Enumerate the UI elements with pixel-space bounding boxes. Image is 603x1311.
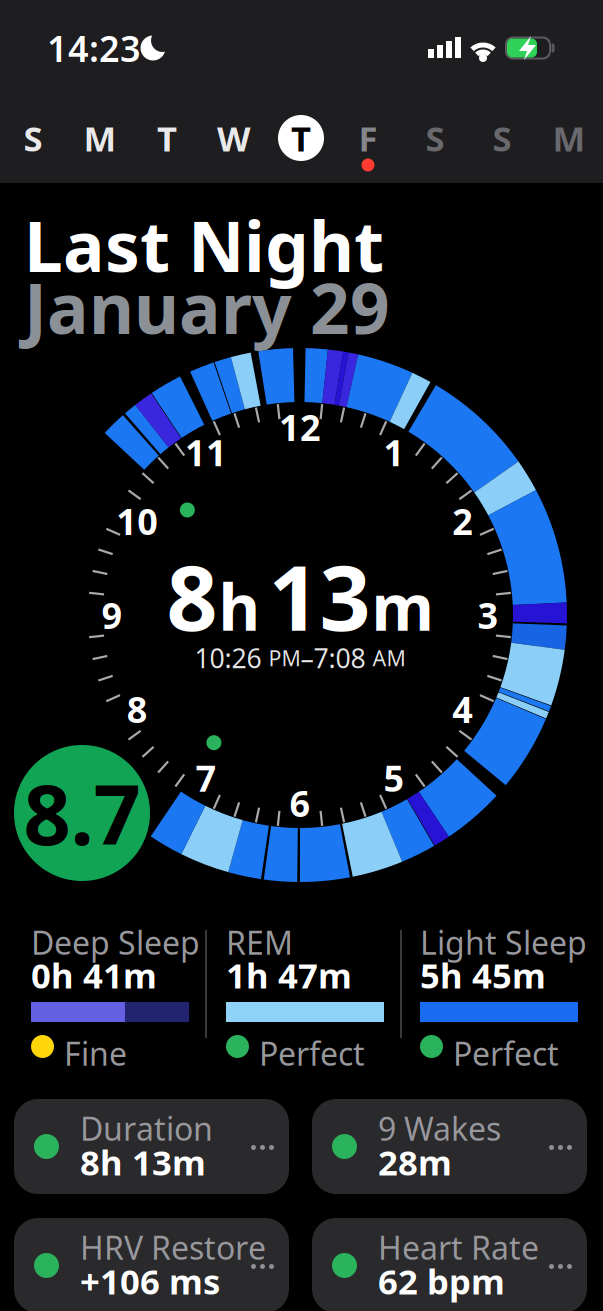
button[interactable]: Duration (14, 1099, 289, 1194)
button[interactable]: 9 Wakes (312, 1099, 587, 1194)
staticText: AM (372, 644, 405, 672)
staticText: Light Sleep (420, 921, 587, 963)
staticText: 1h 47m (226, 952, 352, 998)
staticText: T (291, 115, 311, 161)
staticText: Fine (64, 1032, 127, 1074)
button[interactable]: Heart Rate (312, 1218, 587, 1311)
staticText: 62 bpm (378, 1258, 505, 1304)
staticText: 6 (289, 779, 310, 827)
staticText: Last Night (24, 199, 384, 291)
staticText: Deep Sleep (31, 921, 200, 963)
button[interactable]: M (72, 110, 128, 166)
staticText: 0h 41m (31, 952, 157, 998)
staticText: 7 (195, 754, 216, 802)
staticText: 9 (101, 591, 122, 639)
staticText: Perfect (453, 1032, 559, 1074)
staticText: 10:26 (194, 640, 268, 676)
staticText: S (492, 115, 511, 161)
button[interactable]: M (541, 110, 597, 166)
staticText: 10 (116, 497, 158, 545)
button[interactable]: T (139, 110, 195, 166)
staticText: 12 (279, 403, 321, 451)
staticText: 5h 45m (420, 952, 546, 998)
staticText: January 29 (24, 261, 390, 353)
button[interactable]: F (340, 110, 396, 166)
staticText: 1 (383, 428, 404, 476)
staticText: Perfect (259, 1032, 365, 1074)
staticText: M (83, 115, 116, 161)
staticText: 8 (127, 685, 148, 733)
staticText: 28m (378, 1139, 452, 1185)
staticText: h (218, 563, 260, 648)
staticText: 8h 13m (80, 1139, 206, 1185)
button[interactable]: HRV Restore (14, 1218, 289, 1311)
staticText: HRV Restore (80, 1226, 266, 1268)
button[interactable]: S (407, 110, 463, 166)
staticText: S (23, 115, 42, 161)
button[interactable]: T (273, 110, 329, 166)
button[interactable]: S (5, 110, 61, 166)
staticText: REM (226, 921, 293, 963)
staticText: T (157, 115, 177, 161)
staticText: 4 (452, 685, 473, 733)
staticText: m (371, 563, 433, 648)
staticText: 11 (185, 428, 227, 476)
staticText: +106 ms (80, 1258, 220, 1304)
button[interactable]: W (206, 110, 262, 166)
staticText: 8.7 (23, 758, 140, 868)
staticText: 2 (452, 497, 473, 545)
button[interactable]: S (474, 110, 530, 166)
staticText: Duration (80, 1107, 213, 1149)
staticText: PM (268, 644, 300, 672)
staticText: 9 Wakes (378, 1107, 501, 1149)
staticText: Heart Rate (378, 1226, 539, 1268)
staticText: F (358, 115, 377, 161)
staticText: S (425, 115, 444, 161)
staticText: 8 (166, 537, 217, 655)
staticText: 3 (477, 591, 498, 639)
staticText: 13 (268, 537, 370, 655)
staticText: 14:23 (47, 24, 141, 72)
staticText: 5 (383, 754, 404, 802)
staticText: W (217, 115, 251, 161)
staticText: M (552, 115, 585, 161)
staticText: –7:08 (300, 640, 372, 676)
